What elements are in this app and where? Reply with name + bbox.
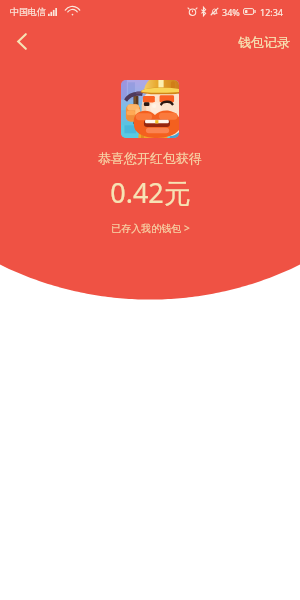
button[interactable]: 已存入我的钱包 >: [103, 216, 198, 240]
staticText: 已存入我的钱包 >: [111, 221, 190, 235]
staticText: 中国电信: [10, 6, 46, 17]
staticText: 恭喜您开红包获得: [98, 150, 202, 166]
button[interactable]: 钱包记录: [238, 32, 300, 52]
staticText: 0.42元: [110, 174, 191, 211]
button[interactable]: Back: [6, 25, 38, 57]
button[interactable]: Red packet sender avatar: [121, 80, 179, 138]
staticText: 12:34: [260, 6, 284, 18]
staticText: 34%: [222, 6, 240, 18]
staticText: 钱包记录: [238, 34, 290, 50]
